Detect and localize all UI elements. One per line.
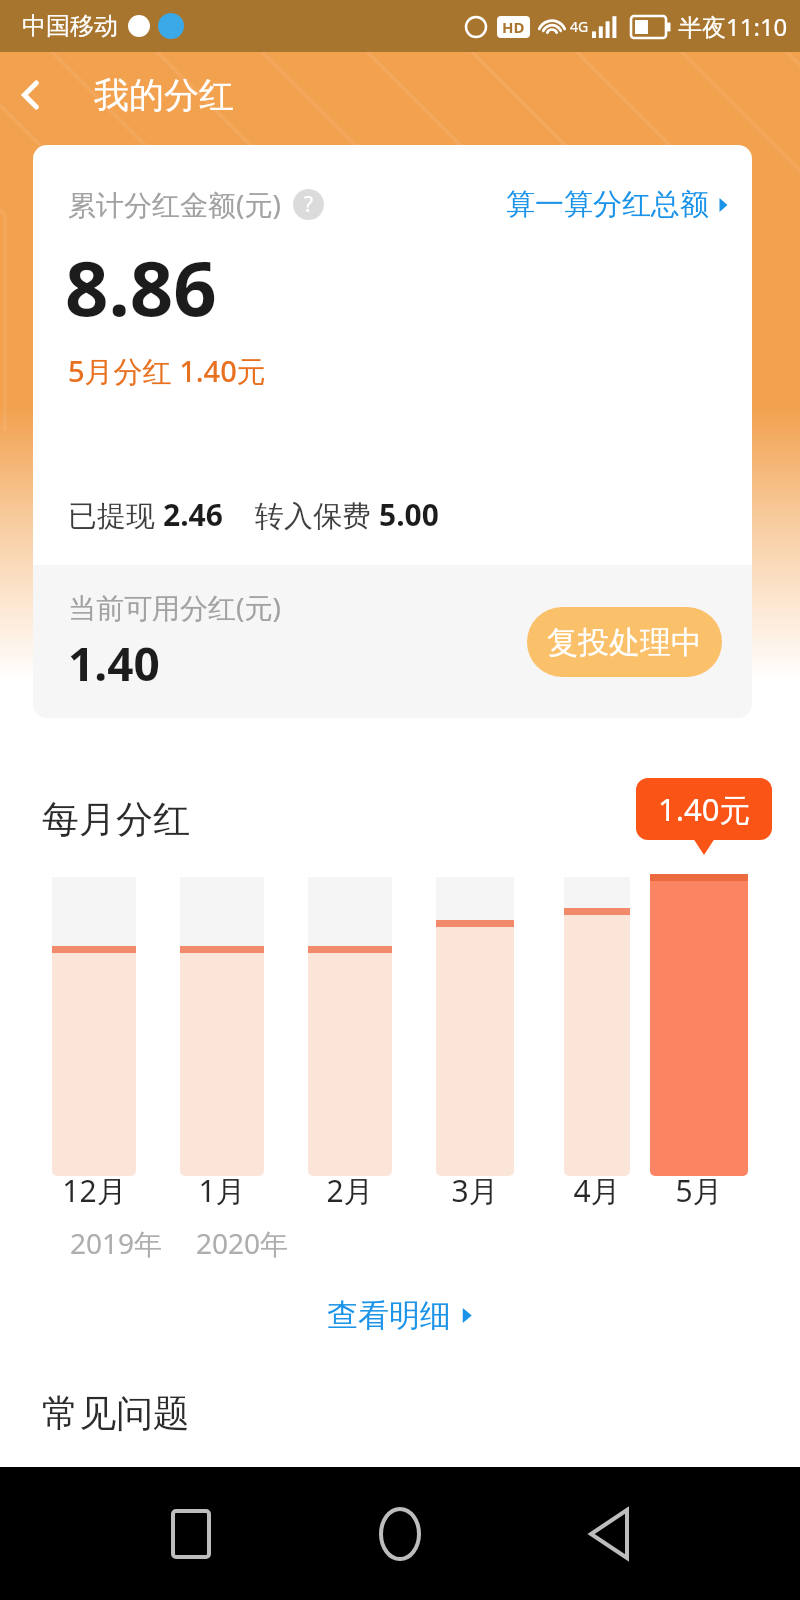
button[interactable]: 查看明细 bbox=[327, 1296, 474, 1335]
staticText: 查看明细 bbox=[327, 1296, 451, 1335]
staticText: 5月 bbox=[675, 1170, 723, 1211]
staticText: 1.40元 bbox=[658, 788, 751, 830]
button[interactable]: Recents bbox=[146, 1489, 236, 1579]
button[interactable]: 算一算分红总额 bbox=[506, 186, 730, 223]
staticText: HD bbox=[502, 17, 525, 37]
staticText: 我的分红 bbox=[94, 73, 234, 117]
staticText: 当前可用分红(元) bbox=[68, 588, 281, 626]
staticText: 3月 bbox=[451, 1170, 499, 1211]
staticText: 8.86 bbox=[65, 235, 217, 339]
staticText: 已提现 bbox=[68, 495, 163, 535]
button[interactable]: Back bbox=[0, 64, 62, 126]
staticText: 1月 bbox=[198, 1170, 246, 1211]
staticText: 4G bbox=[570, 17, 589, 36]
staticText: 2020年 bbox=[196, 1224, 289, 1262]
staticText: 每月分红 bbox=[42, 796, 190, 843]
staticText: ? bbox=[304, 190, 314, 219]
staticText: 转入保费 bbox=[255, 495, 379, 535]
staticText: 4月 bbox=[573, 1170, 621, 1211]
staticText: 累计分红金额(元) bbox=[68, 185, 281, 223]
button[interactable]: Help bbox=[293, 189, 324, 220]
staticText: 2月 bbox=[326, 1170, 374, 1211]
staticText: 复投处理中 bbox=[547, 623, 702, 662]
button[interactable]: Back bbox=[564, 1489, 654, 1579]
staticText: 半夜11:10 bbox=[678, 10, 788, 43]
staticText: 算一算分红总额 bbox=[506, 186, 709, 223]
staticText: 中国移动 bbox=[22, 11, 118, 41]
staticText: 2.46 bbox=[163, 494, 223, 535]
staticText: 12月 bbox=[62, 1170, 127, 1211]
staticText: 5.00 bbox=[379, 494, 439, 535]
staticText: 5月分红 1.40元 bbox=[68, 351, 266, 391]
button[interactable]: Home bbox=[355, 1489, 445, 1579]
staticText: 1.40 bbox=[68, 632, 160, 695]
staticText: 常见问题 bbox=[42, 1390, 190, 1437]
button[interactable]: 复投处理中 bbox=[527, 607, 722, 677]
staticText: 2019年 bbox=[70, 1224, 163, 1262]
